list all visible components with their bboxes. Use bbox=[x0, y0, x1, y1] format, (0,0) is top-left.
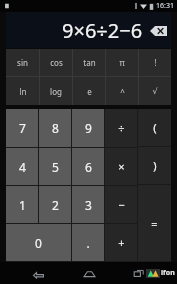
button[interactable]: . bbox=[72, 224, 104, 261]
staticText: ÷ bbox=[118, 121, 125, 136]
staticText: 7 bbox=[19, 120, 26, 136]
button[interactable]: cos bbox=[40, 49, 72, 76]
button[interactable]: ( bbox=[138, 109, 171, 146]
staticText: π bbox=[119, 57, 125, 68]
staticText: ( bbox=[153, 120, 157, 135]
staticText: 3 bbox=[85, 197, 92, 213]
button[interactable]: log bbox=[40, 77, 72, 105]
button[interactable]: × bbox=[105, 148, 137, 185]
staticText: − bbox=[118, 197, 125, 212]
staticText: 16:31 bbox=[156, 1, 174, 11]
button[interactable]: 5 bbox=[39, 148, 71, 185]
staticText: . bbox=[86, 235, 90, 251]
button[interactable]: ! bbox=[139, 49, 171, 76]
staticText: ) bbox=[153, 158, 157, 173]
staticText: 8 bbox=[52, 120, 59, 136]
button[interactable]: 2 bbox=[39, 186, 71, 223]
staticText: 4 bbox=[19, 159, 26, 175]
staticText: ! bbox=[154, 57, 157, 68]
button[interactable]: 8 bbox=[39, 109, 71, 147]
staticText: × bbox=[118, 159, 125, 174]
button[interactable]: π bbox=[106, 49, 138, 76]
staticText: 9×6÷2−6 bbox=[62, 17, 143, 44]
button[interactable]: − bbox=[105, 186, 137, 223]
button[interactable]: ^ bbox=[106, 77, 138, 105]
button[interactable]: 7 bbox=[6, 109, 38, 147]
staticText: 6 bbox=[85, 159, 92, 175]
staticText: 2 bbox=[52, 197, 59, 213]
staticText: cos bbox=[50, 57, 63, 68]
button[interactable]: e bbox=[73, 77, 105, 105]
button[interactable]: Delete bbox=[150, 26, 167, 36]
button[interactable]: ÷ bbox=[105, 109, 137, 147]
button[interactable]: Home bbox=[76, 264, 102, 282]
staticText: log bbox=[50, 86, 62, 97]
button[interactable]: 0 bbox=[6, 224, 71, 261]
staticText: e bbox=[87, 86, 92, 97]
button[interactable]: 1 bbox=[6, 186, 38, 223]
button[interactable]: tan bbox=[73, 49, 105, 76]
button[interactable]: ) bbox=[138, 147, 171, 184]
staticText: 0 bbox=[35, 235, 42, 251]
button[interactable]: 9 bbox=[72, 109, 104, 147]
staticText: √ bbox=[152, 87, 158, 96]
button[interactable]: ln bbox=[6, 77, 39, 105]
staticText: ln bbox=[19, 86, 27, 97]
staticText: ifon bbox=[161, 268, 175, 278]
staticText: 1 bbox=[19, 197, 26, 213]
staticText: 9 bbox=[85, 120, 92, 136]
button[interactable]: √ bbox=[139, 77, 171, 105]
staticText: sin bbox=[17, 57, 28, 68]
button[interactable]: = bbox=[138, 185, 171, 261]
staticText: tan bbox=[83, 57, 96, 68]
staticText: ^ bbox=[120, 86, 125, 97]
staticText: + bbox=[118, 235, 125, 250]
button[interactable]: + bbox=[105, 224, 137, 261]
staticText: 5 bbox=[52, 159, 59, 175]
button[interactable]: sin bbox=[6, 49, 39, 76]
button[interactable]: 6 bbox=[72, 148, 104, 185]
button[interactable]: Recents bbox=[126, 264, 152, 282]
button[interactable]: 3 bbox=[72, 186, 104, 223]
staticText: = bbox=[151, 216, 158, 231]
button[interactable]: 4 bbox=[6, 148, 38, 185]
button[interactable]: Back bbox=[25, 264, 51, 282]
